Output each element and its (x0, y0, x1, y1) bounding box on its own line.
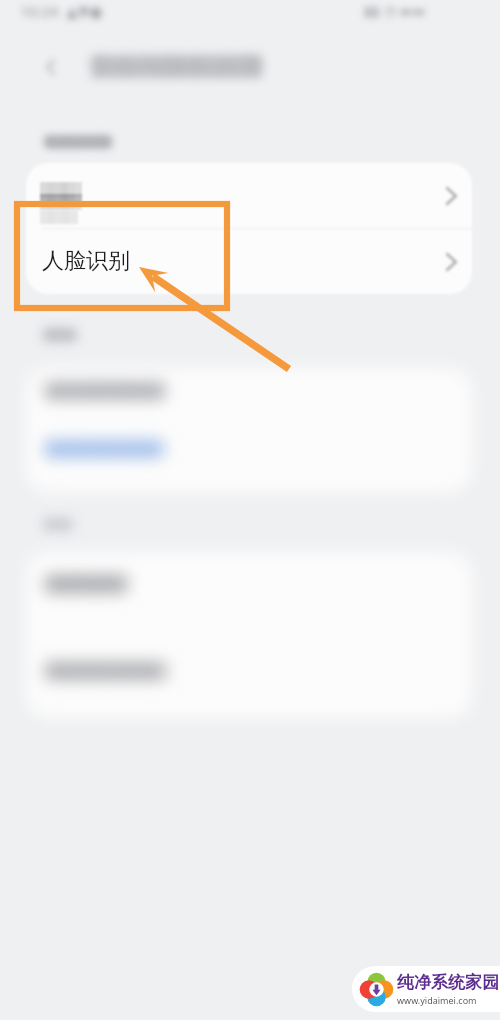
button[interactable]: 人脸识别 (26, 229, 472, 294)
staticText: 生物识别 (42, 130, 114, 153)
staticText: 隐私空间密码 (43, 435, 169, 461)
staticText: 隐私 (41, 512, 77, 535)
button[interactable] (26, 229, 472, 294)
button[interactable] (26, 163, 472, 228)
staticText: 10:24 ▲▼● (20, 1, 103, 21)
staticText: 系统安全选项 (43, 657, 175, 685)
staticText: 权限管理 (43, 570, 131, 598)
staticText: 密码 (41, 323, 77, 346)
staticText: 纯净系统家园 (397, 972, 499, 993)
other: Back (42, 57, 62, 77)
staticText: 安全与隐私设置 (88, 51, 263, 82)
staticText: 人脸识别 (42, 247, 130, 275)
staticText: www.yidaimei.com (397, 994, 477, 1006)
staticText: 锁定屏幕密码 (43, 377, 169, 403)
staticText: ▮▮ ◔ ▬▬ (364, 1, 426, 20)
